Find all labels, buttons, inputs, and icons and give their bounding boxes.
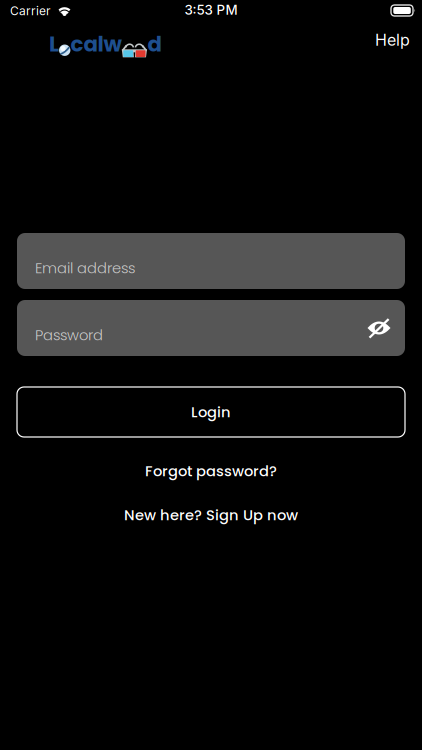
button[interactable]: Forgot password? [0,457,422,485]
staticText: Password [35,325,103,345]
button[interactable]: Password [17,300,405,356]
staticText: d [147,29,161,59]
staticText: Carrier [10,4,51,18]
staticText: 3:53 PM [184,2,237,18]
button[interactable]: Help [369,22,416,58]
staticText: New here? Sign Up now [124,505,298,525]
button[interactable]: Email address [17,233,405,289]
staticText: Email address [35,258,135,278]
button[interactable]: Login [17,387,405,437]
staticText: Help [375,30,410,50]
staticText: Login [191,402,231,422]
button[interactable]: New here? Sign Up now [0,501,422,529]
staticText: L [49,29,59,59]
staticText: calw [70,29,121,59]
staticText: Forgot password? [145,461,277,481]
